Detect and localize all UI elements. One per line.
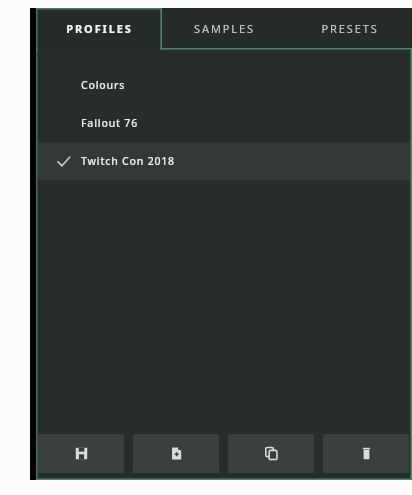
button[interactable]: Colours [38, 66, 410, 104]
button[interactable]: Fallout 76 [38, 104, 410, 142]
button[interactable]: PROFILES [36, 8, 162, 48]
staticText: PROFILES [66, 21, 133, 36]
button[interactable]: Duplicate [228, 434, 314, 473]
staticText: PRESETS [321, 21, 379, 36]
staticText: Fallout 76 [81, 116, 138, 130]
staticText: Colours [81, 78, 126, 92]
button[interactable]: Delete [323, 434, 409, 473]
button[interactable]: New [133, 434, 219, 473]
button[interactable]: SAMPLES [162, 8, 287, 48]
staticText: Twitch Con 2018 [81, 154, 175, 168]
button[interactable]: Save [38, 434, 124, 473]
button[interactable]: PRESETS [287, 8, 412, 48]
button[interactable]: Twitch Con 2018 [38, 142, 410, 180]
staticText: SAMPLES [194, 21, 255, 36]
